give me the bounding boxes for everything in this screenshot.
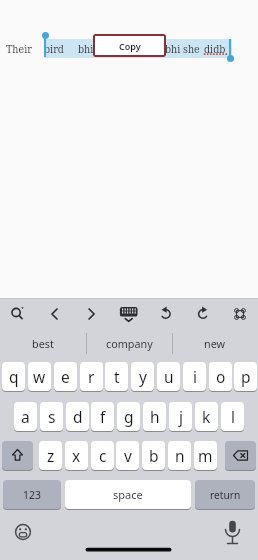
button[interactable]: i (183, 362, 206, 392)
button[interactable]: Copy (93, 34, 166, 57)
staticText: Copy (119, 40, 141, 52)
staticText: y (139, 366, 147, 387)
staticText: a (21, 406, 30, 427)
button[interactable]: r (80, 362, 103, 392)
button[interactable]: x (65, 441, 88, 471)
staticText: bird (44, 43, 64, 55)
staticText: company (106, 336, 153, 351)
button[interactable]: b (142, 441, 165, 471)
staticText: l (231, 406, 235, 427)
button[interactable]: f (91, 402, 114, 432)
staticText: w (33, 366, 46, 387)
staticText: m (198, 445, 213, 466)
staticText: h (150, 406, 160, 427)
staticText: space (113, 487, 143, 502)
staticText: n (175, 445, 185, 466)
staticText: g (124, 406, 134, 427)
staticText: Their (6, 43, 32, 55)
staticText: she (183, 43, 200, 55)
staticText: new (204, 336, 226, 351)
staticText: u (164, 366, 174, 387)
button[interactable] (2, 441, 33, 471)
staticText: i (193, 366, 197, 387)
button[interactable]: u (157, 362, 180, 392)
staticText: didb (204, 43, 226, 55)
button[interactable]: best (0, 331, 86, 356)
staticText: j (179, 406, 183, 427)
staticText: return (210, 488, 241, 502)
staticText: t (114, 366, 120, 387)
button[interactable]: z (39, 441, 62, 471)
staticText: e (61, 366, 70, 387)
staticText: z (47, 445, 55, 466)
staticText: r (88, 366, 95, 387)
button[interactable]: v (116, 441, 139, 471)
staticText: v (124, 445, 132, 466)
button[interactable]: m (194, 441, 217, 471)
button[interactable]: d (66, 402, 89, 432)
button[interactable]: c (91, 441, 114, 471)
staticText: o (216, 366, 226, 387)
staticText: x (72, 445, 81, 466)
button[interactable]: y (131, 362, 154, 392)
staticText: d (73, 406, 83, 427)
staticText: f (100, 406, 106, 427)
button[interactable]: t (105, 362, 128, 392)
button[interactable]: e (54, 362, 77, 392)
button[interactable]: space (65, 480, 191, 510)
button[interactable]: h (143, 402, 166, 432)
staticText: k (202, 406, 211, 427)
button[interactable]: w (28, 362, 51, 392)
button[interactable]: a (14, 402, 37, 432)
staticText: b (149, 445, 159, 466)
button[interactable]: company (86, 331, 172, 356)
button[interactable]: s (40, 402, 63, 432)
staticText: 123 (23, 488, 41, 502)
button[interactable]: p (234, 362, 257, 392)
staticText: bhi (165, 43, 181, 55)
button[interactable] (0, 298, 258, 330)
button[interactable]: return (195, 480, 255, 510)
staticText: s (48, 406, 56, 427)
staticText: q (9, 366, 19, 387)
button[interactable]: o (209, 362, 232, 392)
button[interactable]: q (2, 362, 25, 392)
button[interactable]: new (172, 331, 258, 356)
button[interactable] (225, 441, 256, 471)
staticText: p (241, 366, 251, 387)
button[interactable]: l (221, 402, 244, 432)
staticText: c (99, 445, 107, 466)
button[interactable]: 123 (3, 480, 61, 510)
staticText: bhi (78, 43, 94, 55)
staticText: best (32, 336, 54, 351)
button[interactable]: g (117, 402, 140, 432)
button[interactable]: n (168, 441, 191, 471)
button[interactable]: k (195, 402, 218, 432)
button[interactable]: j (169, 402, 192, 432)
